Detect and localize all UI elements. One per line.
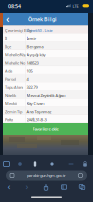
staticText: Bergama xyxy=(26,44,43,49)
staticText: Favorilere ekle xyxy=(32,126,58,132)
staticText: Çevrimiçi Bilgi xyxy=(5,28,32,33)
button[interactable]: New tab xyxy=(15,159,25,169)
button[interactable]: Forward xyxy=(21,181,33,192)
staticText: Nitelik xyxy=(5,93,16,98)
staticText: İlçe xyxy=(5,44,11,49)
button[interactable]: Reader xyxy=(30,159,40,169)
staticText: 148523 xyxy=(26,60,38,65)
staticText: 08:54 xyxy=(8,3,21,10)
staticText: ‹ xyxy=(6,12,9,26)
button[interactable]: Tab overview xyxy=(1,159,11,169)
staticText: LTE xyxy=(72,4,78,9)
staticText: İl xyxy=(5,36,7,41)
staticText: ‹ xyxy=(7,180,10,192)
button[interactable]: Tabs xyxy=(76,181,88,192)
button[interactable]: Back xyxy=(3,13,12,25)
staticText: Zemin Tip xyxy=(5,109,22,114)
staticText: Pafta xyxy=(5,117,13,122)
staticText: Mevcut Zeytinlik Ağacı xyxy=(26,93,65,98)
staticText: parabirgun.hgm.gov.tr xyxy=(27,173,66,178)
staticText: Örnek50 - Liste xyxy=(26,28,52,33)
staticText: Ana Taşınmaz xyxy=(26,109,51,114)
staticText: 105 xyxy=(26,68,32,74)
staticText: Ayışığı köy xyxy=(26,52,45,57)
staticText: Köy Civarı xyxy=(26,101,44,106)
staticText: 4 xyxy=(26,76,28,82)
staticText: İzmir xyxy=(26,36,36,41)
staticText: Mevkii xyxy=(5,101,17,106)
staticText: Örnek Bilgi xyxy=(28,16,57,23)
staticText: 322.79 xyxy=(26,85,37,90)
staticText: Parsel xyxy=(5,76,16,82)
button[interactable]: Back xyxy=(3,181,15,192)
staticText: Mahalle/Köy xyxy=(5,52,26,57)
staticText: › xyxy=(25,180,28,192)
button[interactable]: Page settings xyxy=(47,159,57,169)
button[interactable]: Share xyxy=(40,181,52,192)
staticText: Mahalle No xyxy=(5,60,25,65)
staticText: Tapu Alanı xyxy=(5,85,23,90)
button[interactable]: parabirgun.hgm.gov.tr xyxy=(6,170,87,180)
button[interactable]: Favorilere ekle xyxy=(3,123,88,135)
staticText: 2/4/İL31-B-3 xyxy=(26,117,46,122)
button[interactable]: Privacy xyxy=(80,159,90,169)
button[interactable]: Hide toolbar xyxy=(66,159,76,169)
staticText: Ada xyxy=(5,68,12,74)
button[interactable]: Bookmarks xyxy=(58,181,70,192)
